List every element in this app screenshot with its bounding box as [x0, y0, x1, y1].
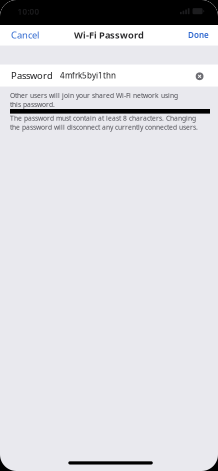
staticText: 4mfrk5byi1thn	[60, 70, 116, 81]
staticText: the password will disconnect any current…	[10, 123, 198, 132]
staticText: this password.	[10, 100, 55, 109]
staticText: Done	[188, 30, 209, 40]
staticText: Wi-Fi Password	[74, 29, 144, 41]
staticText: Other users will join your shared Wi-Fi …	[10, 91, 178, 100]
button[interactable]: Clear text	[192, 68, 207, 83]
staticText: Password	[11, 69, 53, 82]
navigationBar: Wi-Fi Password	[0, 25, 218, 45]
staticText: Cancel	[11, 29, 39, 41]
button[interactable]: Password	[0, 64, 218, 86]
button[interactable]: Cancel	[0, 25, 47, 45]
button[interactable]: Done	[180, 25, 218, 45]
staticText: The password must contain at least 8 cha…	[10, 114, 196, 123]
staticText: 10:00	[18, 6, 40, 17]
